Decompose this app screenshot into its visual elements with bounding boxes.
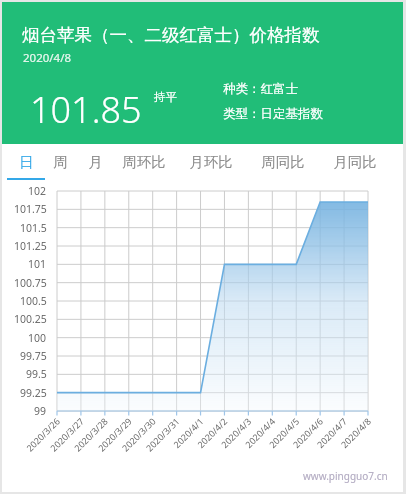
- staticText: 101.85: [30, 85, 142, 134]
- button[interactable]: 周同比: [252, 144, 314, 180]
- staticText: 月: [88, 153, 103, 171]
- staticText: 日: [19, 153, 34, 171]
- staticText: 周: [53, 153, 68, 171]
- staticText: 月环比: [189, 153, 233, 171]
- staticText: 种类：红富士: [223, 81, 298, 97]
- staticText: 烟台苹果（一、二级红富士）价格指数: [22, 24, 320, 46]
- button[interactable]: 月同比: [324, 144, 386, 180]
- button[interactable]: 月: [78, 144, 112, 180]
- button[interactable]: 日: [6, 144, 46, 180]
- staticText: 月同比: [333, 153, 377, 171]
- staticText: 持平: [154, 90, 177, 104]
- button[interactable]: 周环比: [113, 144, 175, 180]
- staticText: 周同比: [261, 153, 305, 171]
- staticText: 类型：日定基指数: [223, 106, 323, 122]
- button[interactable]: 周: [43, 144, 77, 180]
- staticText: 2020/4/8: [23, 50, 72, 66]
- staticText: 周环比: [122, 153, 166, 171]
- button[interactable]: 月环比: [180, 144, 242, 180]
